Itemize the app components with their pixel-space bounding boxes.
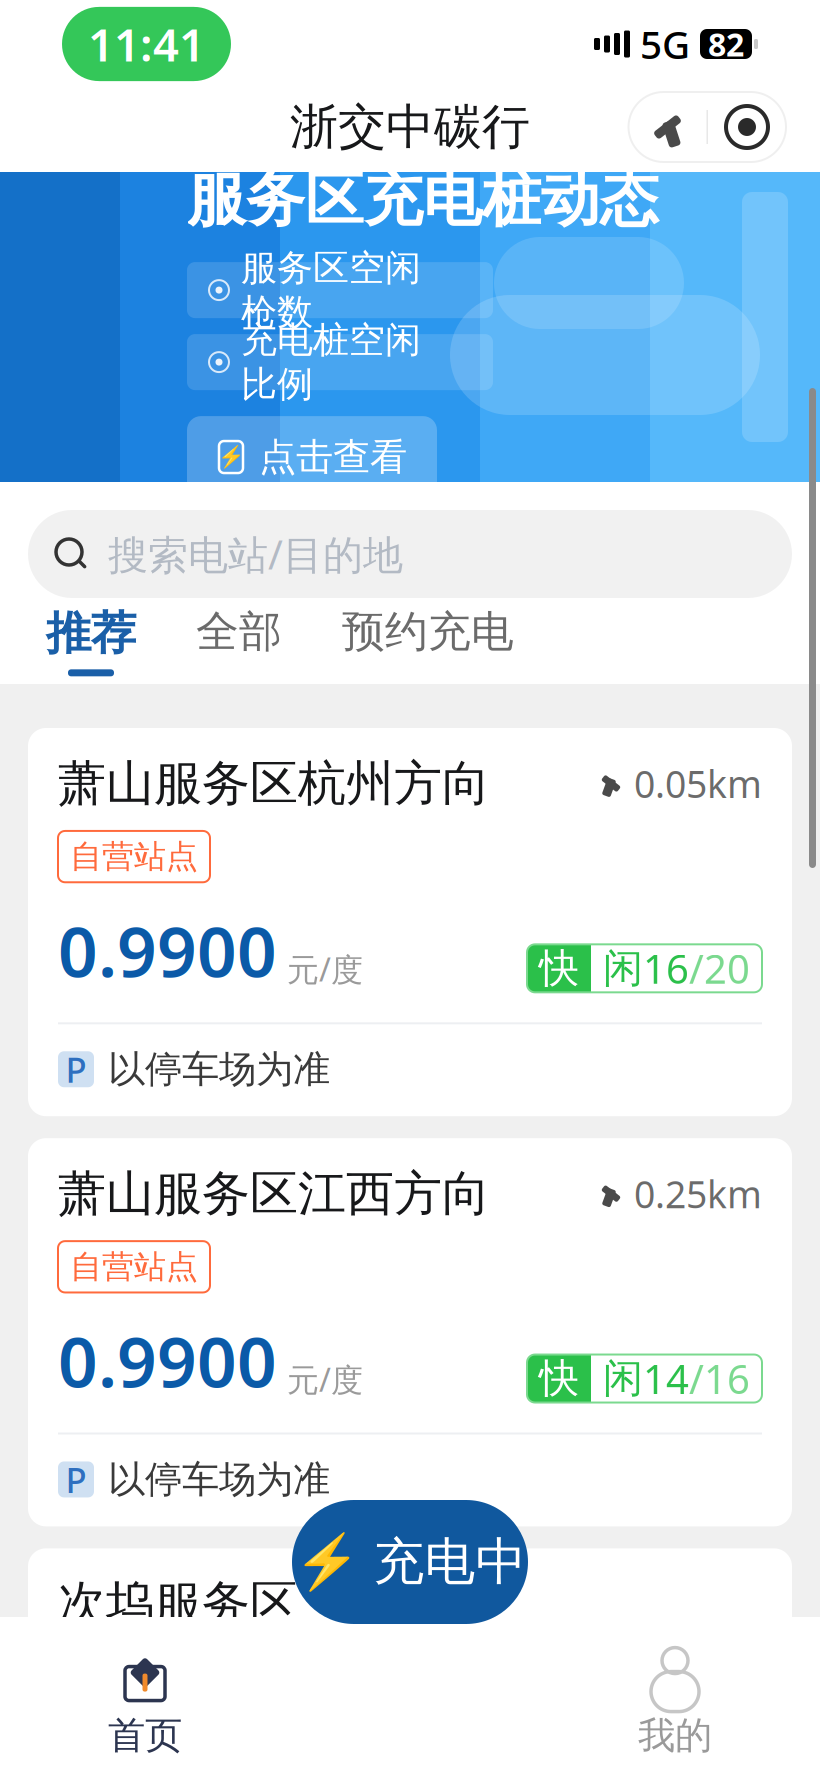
staticText: 充电中 [373,1531,526,1593]
staticText: /16 [689,1352,750,1405]
staticText: 0.9900 [58,904,277,996]
staticText: 次坞服务区（温州方向） [58,1574,490,1692]
staticText: 自营站点 [70,1247,198,1286]
staticText: P [65,1456,86,1502]
staticText: 0.9900 [58,1314,277,1407]
staticText: 萧山服务区江西方向 [58,1164,490,1223]
staticText: 快 [539,1354,579,1403]
staticText: 16 [643,942,689,995]
button[interactable]: 全部 [188,606,290,673]
staticText: 服务区空闲枪数 [241,246,421,334]
staticText: 15.16km [613,1608,762,1658]
staticText: 5G [640,18,690,70]
button[interactable]: 当前位置 [708,96,786,158]
button[interactable]: 萧山服务区杭州方向 [28,728,792,1116]
staticText: 自营站点 [70,837,198,876]
staticText: 服务区充电桩动态 [187,164,659,236]
staticText: 点击查看 [259,434,407,480]
staticText: 以停车场为准 [108,1456,330,1502]
staticText: 元/度 [277,948,363,990]
staticText: ⚡ [217,445,244,469]
staticText: 闲 [603,944,643,993]
button[interactable]: 次坞服务区（温州方向） [28,1548,792,1774]
button[interactable]: 服务区充电桩动态 [0,172,820,482]
staticText: 82 [708,23,744,65]
button[interactable]: 搜索电站/目的地 [28,510,792,598]
staticText: 我的 [638,1713,712,1758]
button[interactable]: 我的 [530,1647,820,1758]
staticText: 元/度 [277,1358,363,1400]
staticText: 首页 [108,1713,182,1758]
staticText: 11:41 [88,14,205,74]
button[interactable]: 首页 [0,1647,290,1758]
staticText: /20 [689,942,750,995]
button[interactable]: 推荐 [38,606,144,676]
button[interactable]: 萧山服务区江西方向 [28,1138,792,1526]
staticText: 闲 [603,1354,643,1403]
staticText: ⚡ [293,1531,359,1592]
staticText: 以停车场为准 [108,1046,330,1092]
staticText: 14 [643,1352,689,1405]
staticText: 0.25km [634,1169,762,1218]
staticText: 充电桩空闲比例 [241,318,421,406]
staticText: 萧山服务区杭州方向 [58,754,490,813]
staticText: 搜索电站/目的地 [108,527,403,580]
staticText: 快 [539,944,579,993]
staticText: 0.05km [634,759,762,808]
staticText: P [65,1046,86,1092]
staticText: 浙交中碳行 [290,97,530,156]
button[interactable]: 预约充电 [334,606,522,673]
staticText: 推荐 [46,606,136,661]
staticText: 预约充电 [342,606,514,658]
button[interactable]: 导航定位 [628,96,706,158]
staticText: 自营站点 [70,1716,198,1756]
button[interactable]: ⚡ [292,1500,528,1624]
staticText: 全部 [196,606,282,658]
